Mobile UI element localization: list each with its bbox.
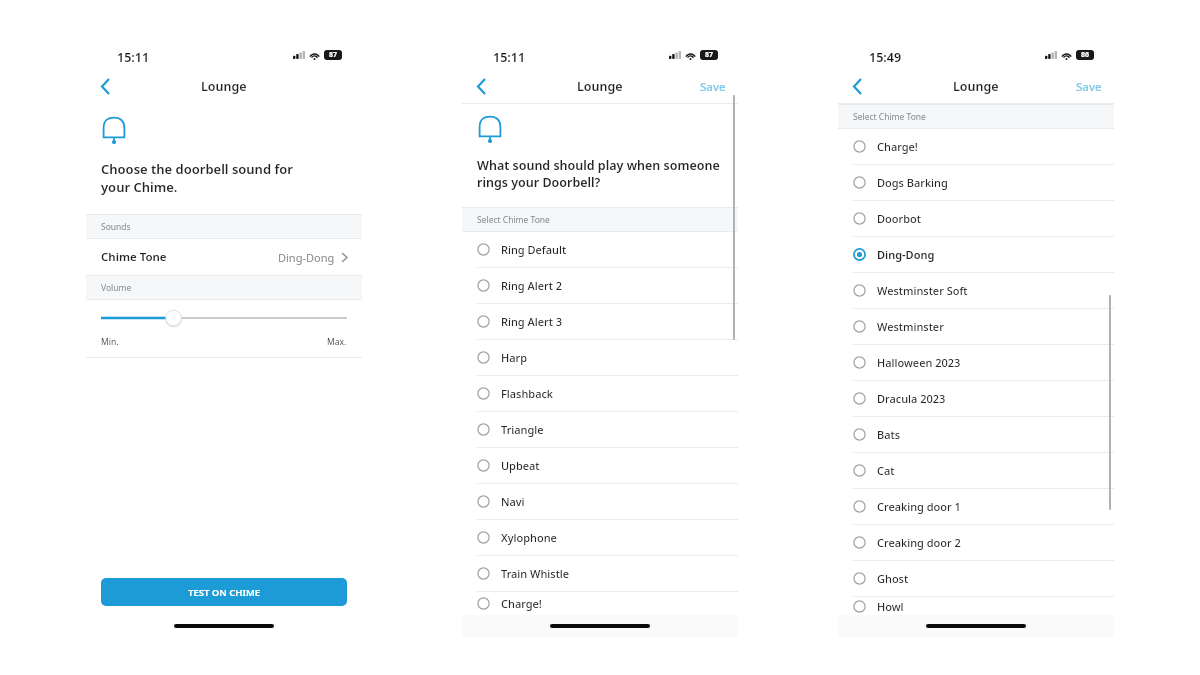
staticText: Save [700,79,726,95]
button[interactable]: Back [89,70,121,103]
staticText: Doorbot [877,211,921,226]
button[interactable]: Bats [838,416,1114,452]
staticText: Upbeat [501,458,540,473]
button[interactable]: Chime Tone [86,239,362,275]
staticText: Harp [501,350,527,365]
button[interactable]: Ring Alert 2 [462,267,738,303]
staticText: 87 [329,50,338,60]
button[interactable]: Xylophone [462,519,738,555]
button[interactable]: Creaking door 2 [838,524,1114,560]
staticText: Sounds [101,221,131,233]
staticText: Select Chime Tone [853,111,926,123]
staticText: Chime Tone [101,249,167,265]
staticText: 15:11 [117,49,150,66]
staticText: Max. [327,336,347,348]
staticText: Dracula 2023 [877,391,946,406]
staticText: What sound should play when someone ring… [477,157,720,191]
staticText: Lounge [953,78,999,95]
button[interactable]: Ghost [838,560,1114,596]
button[interactable]: Charge! [462,591,738,615]
staticText: Min. [101,336,119,348]
button[interactable]: Harp [462,339,738,375]
staticText: Save [1076,79,1102,95]
staticText: 15:11 [493,49,526,66]
button[interactable]: Ring Default [462,232,738,267]
staticText: Ding-Dong [877,247,935,262]
button[interactable]: Dracula 2023 [838,380,1114,416]
staticText: Flashback [501,386,553,401]
staticText: TEST ON CHIME [188,586,261,599]
staticText: 87 [705,50,714,60]
button[interactable]: Save [1076,70,1102,103]
staticText: Ring Default [501,242,567,257]
button[interactable]: Ding-Dong [838,236,1114,272]
button[interactable]: Back [841,70,873,103]
button[interactable]: Westminster Soft [838,272,1114,308]
staticText: Xylophone [501,530,557,545]
button[interactable]: Save [700,70,726,103]
button[interactable]: Doorbot [838,200,1114,236]
staticText: Select Chime Tone [477,214,550,226]
button[interactable]: Train Whistle [462,555,738,591]
staticText: Charge! [877,139,918,154]
staticText: Lounge [201,78,247,95]
staticText: Westminster Soft [877,283,968,298]
staticText: 86 [1081,50,1090,60]
staticText: Train Whistle [501,566,570,581]
button[interactable]: Upbeat [462,447,738,483]
button[interactable]: TEST ON CHIME [101,578,347,606]
staticText: Ding-Dong [278,250,335,265]
staticText: Ring Alert 2 [501,278,563,293]
button[interactable]: Ring Alert 3 [462,303,738,339]
staticText: Howl [877,599,904,614]
staticText: Westminster [877,319,944,334]
staticText: Creaking door 1 [877,499,961,514]
button[interactable]: Charge! [838,129,1114,164]
staticText: Lounge [577,78,623,95]
staticText: Triangle [501,422,544,437]
button[interactable]: Triangle [462,411,738,447]
button[interactable]: Back [465,70,497,103]
staticText: Choose the doorbell sound for your Chime… [101,160,293,196]
staticText: 15:49 [869,49,902,66]
button[interactable]: Flashback [462,375,738,411]
button[interactable]: Navi [462,483,738,519]
button[interactable]: Creaking door 1 [838,488,1114,524]
button[interactable]: Westminster [838,308,1114,344]
staticText: Dogs Barking [877,175,948,190]
button[interactable]: Dogs Barking [838,164,1114,200]
staticText: Charge! [501,596,542,611]
staticText: Volume [101,282,132,294]
staticText: Halloween 2023 [877,355,961,370]
button[interactable]: Cat [838,452,1114,488]
staticText: Ghost [877,571,909,586]
staticText: Cat [877,463,895,478]
staticText: Creaking door 2 [877,535,961,550]
button[interactable]: Howl [838,596,1114,615]
button[interactable]: Halloween 2023 [838,344,1114,380]
staticText: Bats [877,427,901,442]
staticText: Ring Alert 3 [501,314,563,329]
staticText: Navi [501,494,525,509]
